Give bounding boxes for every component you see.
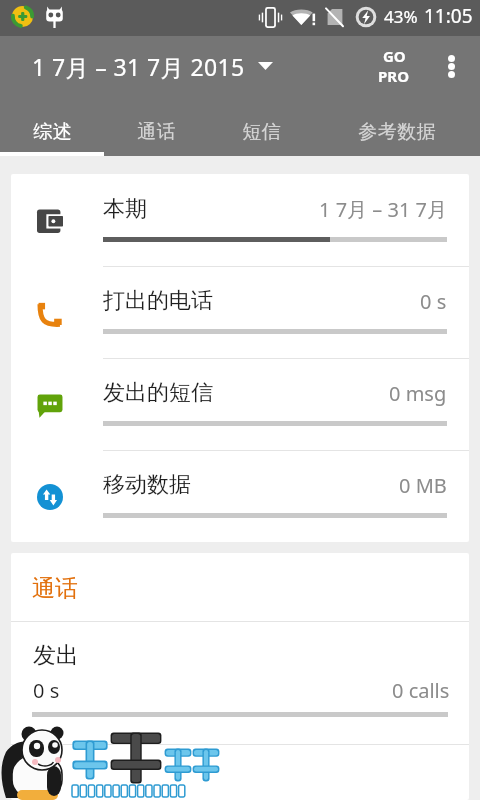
- button[interactable]: 通话: [104, 105, 209, 156]
- button[interactable]: GO: [368, 42, 420, 90]
- button[interactable]: 发出的短信: [11, 358, 469, 450]
- staticText: GO: [383, 46, 406, 66]
- button[interactable]: 发出: [11, 622, 469, 744]
- staticText: 0 s: [420, 288, 447, 315]
- staticText: 短信: [242, 120, 281, 144]
- staticText: 本期: [103, 195, 147, 223]
- staticText: 0 MB: [399, 472, 447, 499]
- staticText: 0 s: [33, 677, 60, 704]
- button[interactable]: 移动数据: [11, 450, 469, 542]
- staticText: 移动数据: [103, 471, 191, 499]
- button[interactable]: 打出的电话: [11, 266, 469, 358]
- button[interactable]: 本期: [11, 174, 469, 266]
- staticText: 11:05: [424, 3, 473, 29]
- staticText: 43%: [384, 5, 418, 28]
- staticText: 综述: [33, 120, 72, 144]
- staticText: PRO: [378, 66, 410, 86]
- staticText: 1 7月 – 31 7月: [319, 196, 447, 223]
- button[interactable]: 通话: [11, 553, 469, 621]
- button[interactable]: More options: [427, 42, 475, 90]
- staticText: 0 calls: [392, 677, 450, 704]
- staticText: 发出的短信: [103, 379, 213, 407]
- staticText: 0 msg: [389, 380, 447, 407]
- staticText: 通话: [32, 574, 78, 603]
- button[interactable]: 综述: [0, 105, 104, 156]
- button[interactable]: 1 7月 – 31 7月 2015: [0, 45, 285, 88]
- staticText: 打出的电话: [103, 287, 213, 315]
- button[interactable]: 参考数据: [314, 105, 480, 156]
- staticText: 1 7月 – 31 7月 2015: [32, 51, 245, 82]
- button[interactable]: 短信: [209, 105, 314, 156]
- staticText: 通话: [137, 120, 176, 144]
- staticText: 发出: [33, 641, 79, 670]
- staticText: 参考数据: [358, 120, 436, 144]
